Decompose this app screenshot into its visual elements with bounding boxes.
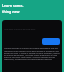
- staticText: How does machine learning work: [4, 28, 36, 31]
- staticText: Machine learning is a branch of artifici…: [4, 47, 60, 60]
- button[interactable]: [42, 38, 60, 45]
- staticText: Learn some- thing new: [2, 3, 24, 15]
